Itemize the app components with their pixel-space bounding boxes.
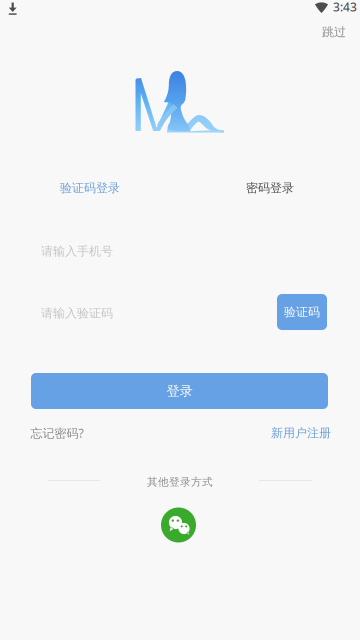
staticText: 新用户注册 xyxy=(271,426,331,440)
staticText: 密码登录 xyxy=(246,181,294,195)
staticText: 登录 xyxy=(166,383,192,399)
staticText: 其他登录方式 xyxy=(147,475,213,488)
button[interactable]: 验证码 xyxy=(277,294,327,330)
button[interactable]: 新用户注册 xyxy=(267,423,335,443)
button[interactable]: 验证码登录 xyxy=(52,176,128,200)
staticText: 请输入验证码 xyxy=(41,306,113,321)
button[interactable]: Sign in with WeChat xyxy=(161,506,196,544)
staticText: 请输入手机号 xyxy=(41,244,113,259)
staticText: 验证码登录 xyxy=(60,181,120,195)
staticText: 3:43 xyxy=(333,0,357,15)
staticText: 跳过 xyxy=(322,25,346,39)
button[interactable]: 密码登录 xyxy=(235,176,305,200)
button[interactable]: 忘记密码? xyxy=(28,423,86,443)
button[interactable]: 跳过 xyxy=(313,20,355,44)
staticText: 忘记密码? xyxy=(30,425,83,441)
button[interactable]: 登录 xyxy=(31,373,328,409)
staticText: 验证码 xyxy=(284,305,320,319)
